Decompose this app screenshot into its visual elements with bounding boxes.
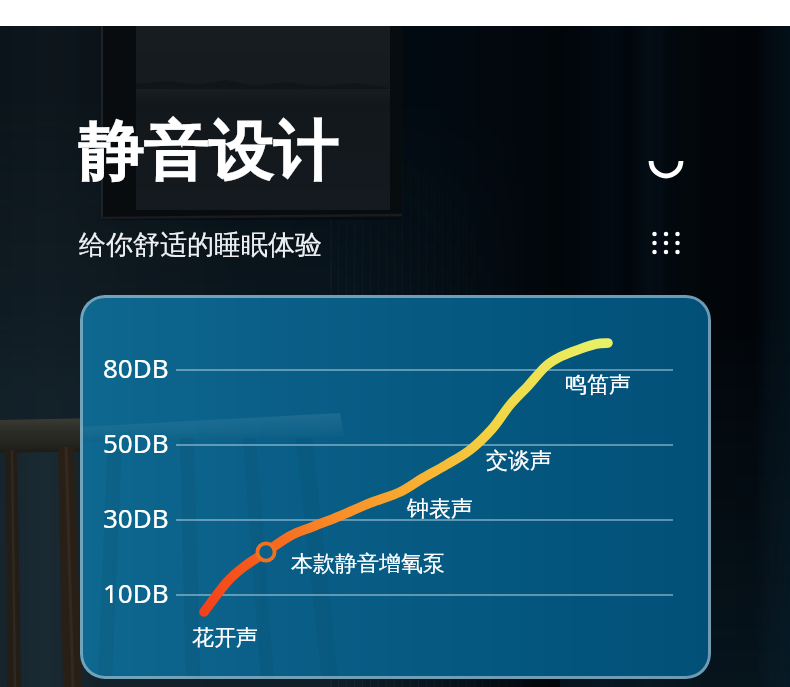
staticText: 本款静音增氧泵 [291,550,445,578]
button[interactable]: Silent mode [643,138,689,184]
staticText: 花开声 [192,624,258,652]
staticText: 50DB [103,425,169,460]
staticText: 10DB [103,575,169,610]
staticText: 30DB [103,500,169,535]
button[interactable]: 80DB [80,295,711,679]
button[interactable]: More apps [644,221,688,265]
staticText: 静音设计 [78,111,338,193]
staticText: 交谈声 [486,447,552,475]
staticText: 鸣笛声 [565,371,631,399]
staticText: 80DB [103,350,169,385]
staticText: 钟表声 [407,495,473,523]
staticText: 给你舒适的睡眠体验 [79,228,322,262]
